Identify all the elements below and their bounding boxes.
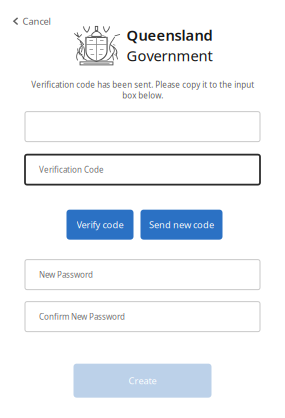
staticText: Verify code: [76, 218, 123, 231]
staticText: Create: [128, 374, 156, 387]
staticText: Verification code has been sent. Please …: [31, 79, 254, 101]
staticText: New Password: [39, 269, 93, 280]
staticText: Verification Code: [39, 164, 104, 175]
staticText: Cancel: [22, 15, 50, 27]
button[interactable]: New Password: [25, 260, 260, 290]
button[interactable]: Send new code: [140, 210, 222, 240]
staticText: Queensland: [126, 25, 212, 45]
button[interactable]: Email or username: [25, 112, 260, 142]
staticText: Government: [126, 46, 212, 65]
button[interactable]: Verify code: [66, 210, 133, 240]
button[interactable]: Confirm New Password: [25, 302, 260, 332]
button[interactable]: Cancel: [0, 0, 58, 30]
staticText: Confirm New Password: [39, 311, 125, 322]
button[interactable]: Verification Code: [25, 155, 260, 185]
staticText: Send new code: [149, 218, 214, 231]
button[interactable]: Create: [73, 364, 211, 398]
